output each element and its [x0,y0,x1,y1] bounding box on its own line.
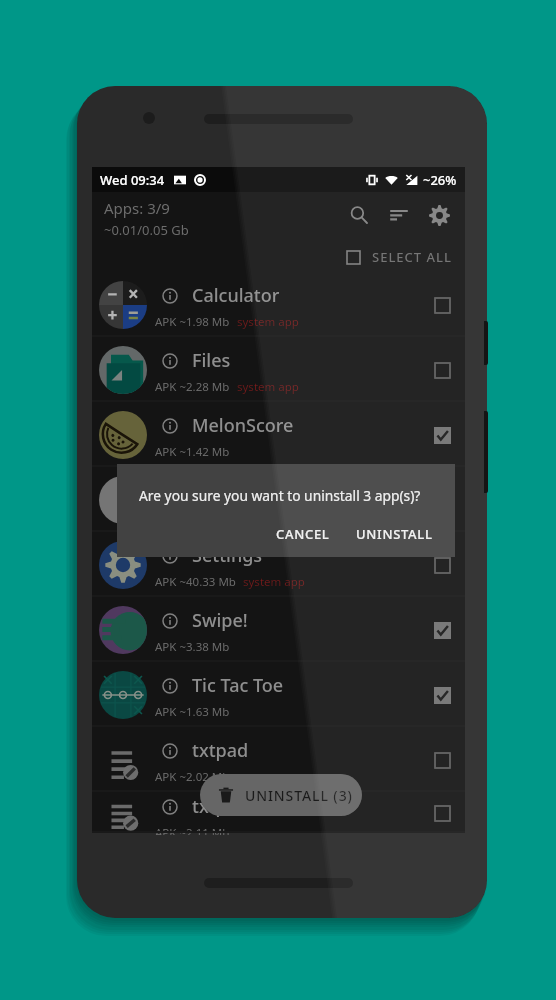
staticText: system app [243,574,305,590]
button[interactable]: Sort [379,195,419,235]
staticText: SELECT ALL [372,248,452,266]
staticText: APK ~1.63 Mb [155,704,230,720]
button[interactable]: txtpad [92,727,465,792]
staticText: Messages [192,478,277,503]
staticText: APK ~2.28 Mb [155,379,230,395]
staticText: APK ~2.11 Mb [155,825,230,835]
staticText: system app [237,379,299,395]
button[interactable]: Settings [419,195,459,235]
staticText: APK ~40.33 Mb [155,574,236,590]
staticText: Calculator [192,283,280,308]
staticText: UNINSTALL (3) [245,786,353,805]
staticText: ~0.01/0.05 Gb [104,221,189,239]
button[interactable]: Calculator [92,272,465,337]
button[interactable]: Files [92,337,465,402]
staticText: APK ~1.98 Mb [155,314,230,330]
button[interactable]: Tic Tac Toe [92,662,465,727]
staticText: Apps: 3/9 [104,198,170,218]
button[interactable]: txtpad+ [92,792,465,833]
staticText: Tic Tac Toe [192,673,284,698]
staticText: APK ~1.42 Mb [155,444,230,460]
staticText: UNINSTALL [356,525,433,543]
staticText: Wed 09:34 [100,171,165,189]
button[interactable]: Messages [92,467,465,532]
staticText: MelonScore [192,413,294,438]
button[interactable]: UNINSTALL [347,520,442,548]
staticText: ~26% [423,171,457,189]
button[interactable]: Search [339,195,379,235]
staticText: txtpad [192,738,249,763]
button[interactable]: CANCEL [267,520,339,548]
button[interactable]: UNINSTALL (3) [200,774,362,816]
button[interactable]: SELECT ALL [340,242,458,272]
staticText: Swipe! [192,608,248,633]
staticText: Settings [192,543,263,568]
button[interactable]: Swipe! [92,597,465,662]
staticText: Files [192,348,231,373]
staticText: txtpad+ [192,794,259,819]
staticText: Are you sure you want to uninstall 3 app… [139,486,421,505]
button[interactable]: Settings [92,532,465,597]
button[interactable]: MelonScore [92,402,465,467]
staticText: APK ~3.38 Mb [155,639,230,655]
staticText: CANCEL [276,525,330,543]
staticText: APK ~2.02 Mb [155,769,230,785]
staticText: system app [237,314,299,330]
